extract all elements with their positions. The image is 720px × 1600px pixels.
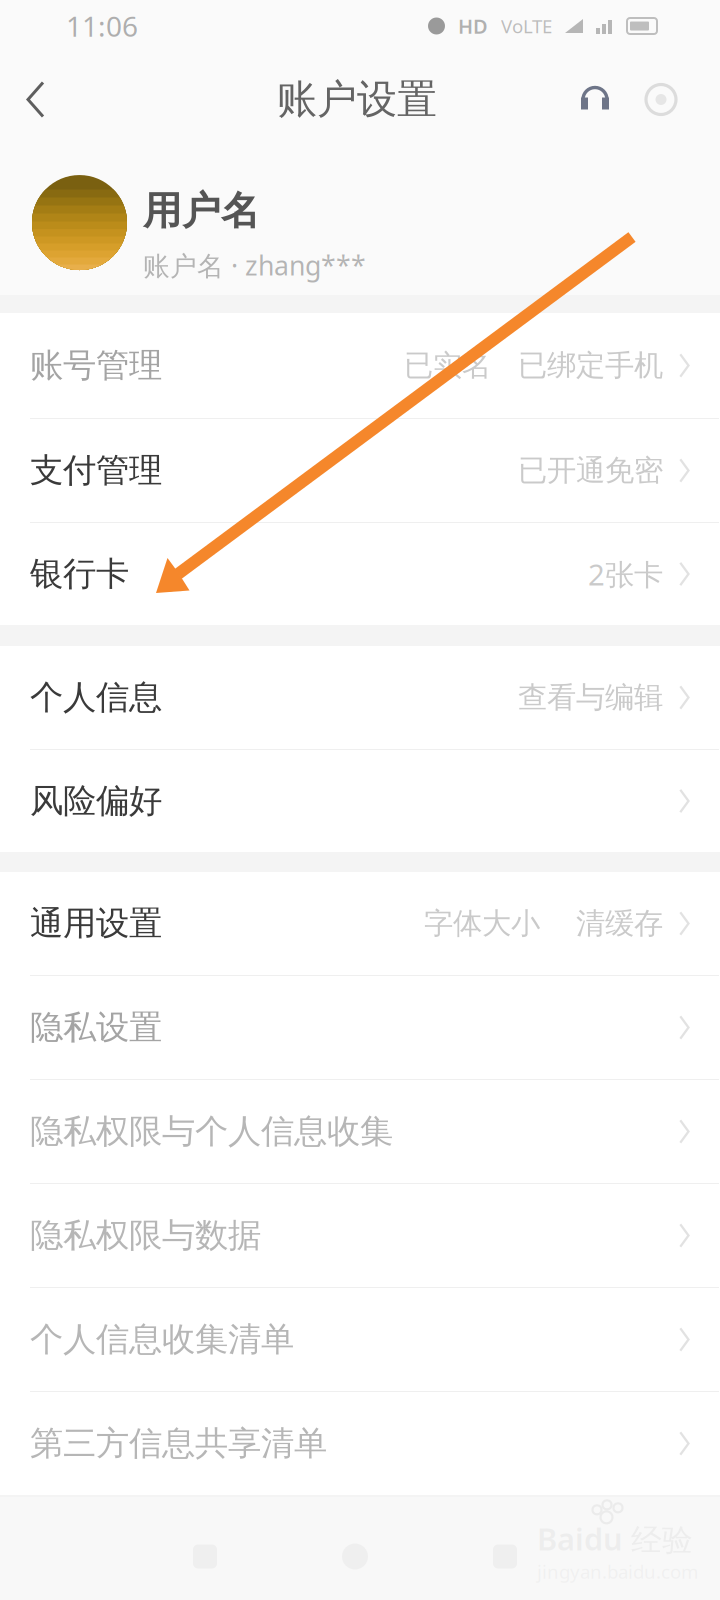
button[interactable]: 客服 xyxy=(562,52,628,147)
button[interactable]: 用户名 xyxy=(0,147,720,295)
staticText: 第三方信息共享清单 xyxy=(30,1423,327,1464)
staticText: 通用设置 xyxy=(30,903,162,944)
staticText: 已开通免密 xyxy=(518,452,663,488)
staticText: Baidu 经验 xyxy=(537,1518,693,1559)
staticText: 隐私权限与数据 xyxy=(30,1215,261,1256)
staticText: HD xyxy=(458,13,488,39)
staticText: 字体大小 清缓存 xyxy=(424,905,663,941)
button[interactable]: 隐私设置 xyxy=(0,976,720,1079)
staticText: 银行卡 xyxy=(30,553,129,594)
staticText: 账户名 · zhang*** xyxy=(143,247,366,283)
button[interactable]: 风险偏好 xyxy=(0,750,720,852)
staticText: 账号管理 xyxy=(30,345,162,386)
button[interactable]: 支付管理 xyxy=(0,419,720,522)
button[interactable]: 隐私权限与个人信息收集 xyxy=(0,1080,720,1183)
staticText: 11:06 xyxy=(66,7,138,45)
button[interactable]: 更多设置 xyxy=(628,52,694,147)
button[interactable]: 通用设置 xyxy=(0,872,720,975)
staticText: 用户名 xyxy=(143,187,260,234)
staticText: 隐私权限与个人信息收集 xyxy=(30,1111,393,1152)
button[interactable]: 隐私权限与数据 xyxy=(0,1184,720,1287)
button[interactable]: 银行卡 xyxy=(0,523,720,625)
button[interactable]: 返回 xyxy=(0,52,64,147)
staticText: 隐私设置 xyxy=(30,1007,162,1048)
staticText: 支付管理 xyxy=(30,450,162,491)
staticText: 2张卡 xyxy=(588,554,663,593)
button[interactable]: 个人信息 xyxy=(0,646,720,749)
staticText: 风险偏好 xyxy=(30,780,162,821)
staticText: 个人信息 xyxy=(30,677,162,718)
staticText: VoLTE xyxy=(501,14,552,38)
staticText: 个人信息收集清单 xyxy=(30,1319,294,1360)
staticText: 已实名 已绑定手机 xyxy=(404,347,663,383)
staticText: 账户设置 xyxy=(277,75,437,124)
button[interactable]: 账号管理 xyxy=(0,313,720,418)
staticText: 查看与编辑 xyxy=(518,679,663,715)
button[interactable]: 第三方信息共享清单 xyxy=(0,1392,720,1495)
button[interactable]: 个人信息收集清单 xyxy=(0,1288,720,1391)
